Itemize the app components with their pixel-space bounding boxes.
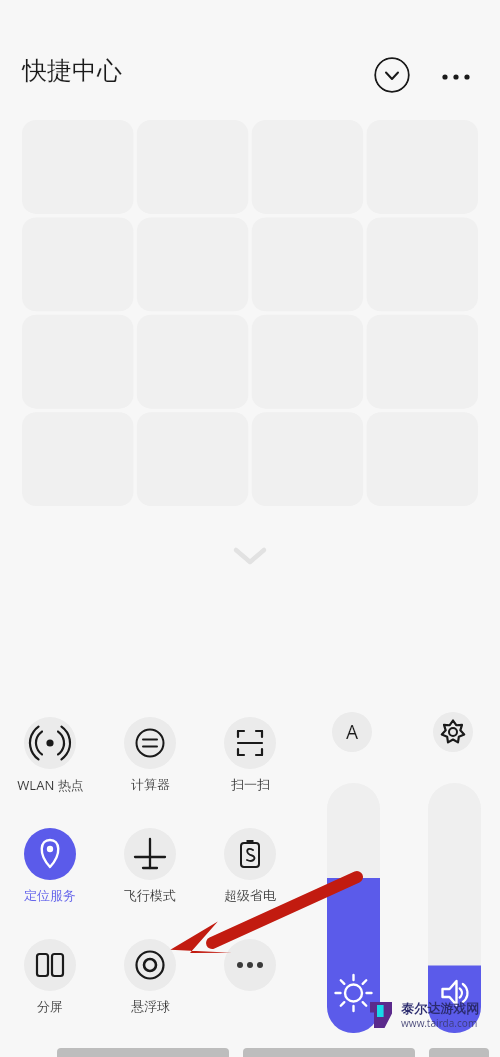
- button[interactable]: More options: [436, 57, 476, 97]
- button[interactable]: WLAN 热点: [5, 717, 95, 794]
- button[interactable]: 超级省电: [205, 828, 295, 903]
- staticText: 计算器: [131, 776, 170, 792]
- button[interactable]: Expand: [225, 535, 275, 575]
- staticText: 快捷中心: [22, 55, 122, 86]
- staticText: 定位服务: [24, 887, 76, 903]
- staticText: 飞行模式: [124, 887, 176, 903]
- staticText: A: [346, 719, 359, 745]
- staticText: 超级省电: [224, 887, 276, 903]
- button[interactable]: 扫一扫: [205, 717, 295, 792]
- button[interactable]: Brightness: [327, 783, 380, 1033]
- button[interactable]: Collapse: [374, 57, 410, 93]
- button[interactable]: Sound settings: [433, 712, 473, 752]
- staticText: 泰尔达游戏网: [401, 1000, 479, 1016]
- button[interactable]: 飞行模式: [105, 828, 195, 903]
- button[interactable]: Volume: [428, 783, 481, 1033]
- button[interactable]: Auto brightness: [332, 712, 372, 752]
- staticText: 扫一扫: [231, 776, 270, 792]
- staticText: 悬浮球: [131, 998, 170, 1014]
- button[interactable]: 定位服务: [5, 828, 95, 903]
- staticText: 分屏: [37, 998, 63, 1014]
- staticText: WLAN 热点: [17, 776, 84, 794]
- button[interactable]: More tiles: [224, 939, 276, 991]
- button[interactable]: 悬浮球: [105, 939, 195, 1014]
- button[interactable]: 计算器: [105, 717, 195, 792]
- button[interactable]: 分屏: [5, 939, 95, 1014]
- staticText: www.tairda.com: [401, 1016, 478, 1030]
